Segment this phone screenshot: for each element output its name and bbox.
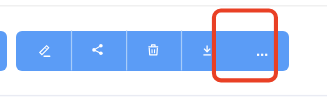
button[interactable]: More options <box>236 31 289 71</box>
button[interactable]: Download <box>182 31 237 71</box>
button[interactable]: Back <box>0 31 7 71</box>
button[interactable]: Delete <box>127 31 182 71</box>
button[interactable]: Edit <box>16 31 72 71</box>
button[interactable]: Share <box>72 31 127 71</box>
